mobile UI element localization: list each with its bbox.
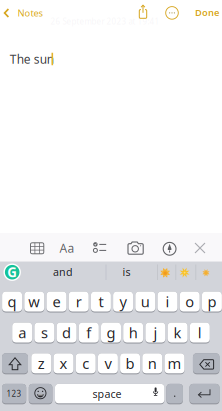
button[interactable]: a — [12, 322, 32, 343]
button[interactable]: q — [2, 291, 22, 312]
button[interactable]: 123 — [2, 384, 26, 404]
staticText: a — [18, 323, 26, 342]
staticText: r — [76, 292, 82, 311]
button[interactable]: Aa — [56, 237, 78, 259]
staticText: i — [165, 292, 169, 311]
staticText: 26 September 2023 at 19:41 — [50, 16, 159, 27]
button[interactable]: n — [142, 353, 162, 374]
staticText: t — [98, 292, 103, 311]
button[interactable] — [2, 353, 28, 374]
button[interactable] — [55, 384, 164, 404]
button[interactable]: s — [34, 322, 54, 343]
staticText: 123 — [7, 388, 22, 399]
button[interactable]: e — [46, 291, 66, 312]
button[interactable] — [166, 384, 183, 404]
button[interactable] — [197, 263, 215, 282]
button[interactable]: z — [31, 353, 51, 374]
button[interactable] — [159, 238, 181, 260]
button[interactable]: w — [24, 291, 44, 312]
staticText: g — [106, 323, 115, 342]
button[interactable] — [123, 237, 147, 259]
button[interactable]: g — [101, 322, 121, 343]
staticText: l — [198, 323, 202, 342]
staticText: v — [104, 354, 111, 373]
button[interactable] — [177, 263, 195, 282]
staticText: is — [122, 265, 130, 279]
button[interactable]: d — [57, 322, 77, 343]
staticText: Aa — [59, 240, 74, 256]
button[interactable]: u — [135, 291, 155, 312]
button[interactable] — [158, 263, 175, 282]
staticText: j — [153, 323, 157, 342]
staticText: s — [41, 323, 48, 342]
staticText: and — [53, 265, 73, 279]
button[interactable]: c — [76, 353, 96, 374]
staticText: Done — [195, 6, 219, 18]
button[interactable] — [26, 237, 48, 259]
button[interactable]: m — [164, 353, 184, 374]
button[interactable]: f — [79, 322, 99, 343]
staticText: z — [38, 354, 45, 373]
staticText: n — [148, 354, 157, 373]
staticText: x — [59, 354, 67, 373]
button[interactable]: Done — [187, 4, 222, 20]
staticText: The sun — [10, 51, 54, 67]
button[interactable] — [135, 3, 151, 21]
staticText: w — [28, 292, 40, 311]
button[interactable]: and — [23, 262, 103, 281]
button[interactable]: k — [168, 322, 188, 343]
staticText: Notes — [17, 7, 42, 19]
button[interactable] — [29, 384, 52, 404]
button[interactable]: y — [113, 291, 133, 312]
button[interactable]: Notes — [10, 5, 50, 21]
button[interactable]: l — [190, 322, 210, 343]
staticText: k — [174, 323, 182, 342]
button[interactable]: i — [157, 291, 177, 312]
staticText: o — [185, 292, 194, 311]
staticText: e — [52, 292, 60, 311]
staticText: b — [126, 354, 135, 373]
button[interactable]: v — [98, 353, 118, 374]
staticText: p — [207, 292, 216, 311]
button[interactable]: is — [102, 262, 151, 281]
staticText: f — [86, 323, 91, 342]
staticText: h — [129, 323, 138, 342]
button[interactable] — [189, 237, 211, 259]
button[interactable] — [189, 384, 219, 404]
staticText: G — [7, 263, 17, 281]
staticText: y — [120, 292, 127, 311]
button[interactable]: o — [180, 291, 200, 312]
button[interactable]: h — [123, 322, 143, 343]
staticText: d — [62, 323, 71, 342]
staticText: c — [82, 354, 89, 373]
button[interactable]: t — [91, 291, 111, 312]
button[interactable]: b — [120, 353, 140, 374]
button[interactable] — [88, 236, 110, 258]
button[interactable] — [164, 5, 180, 21]
button[interactable]: x — [53, 353, 73, 374]
staticText: q — [8, 292, 17, 311]
staticText: space — [92, 387, 121, 401]
button[interactable] — [193, 353, 219, 374]
button[interactable]: G — [3, 263, 21, 281]
button[interactable]: p — [202, 291, 222, 312]
staticText: m — [167, 354, 181, 373]
button[interactable]: r — [69, 291, 89, 312]
staticText: u — [141, 292, 150, 311]
button[interactable]: j — [145, 322, 165, 343]
